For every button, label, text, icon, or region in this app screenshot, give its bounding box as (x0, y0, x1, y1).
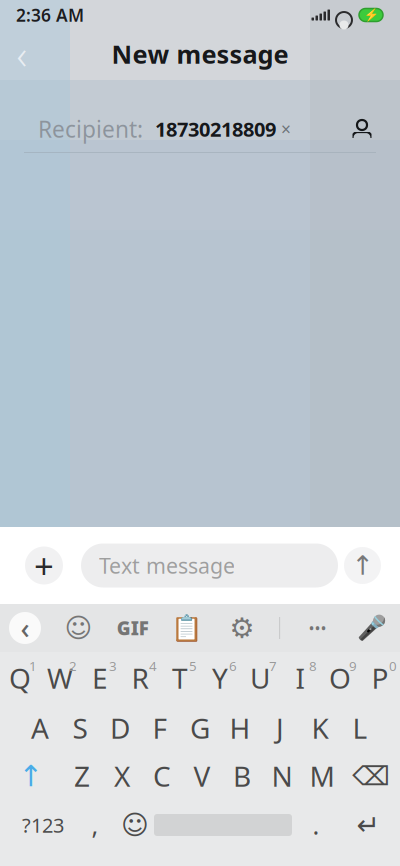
staticText: K (311, 709, 328, 747)
button[interactable]: Back (0, 32, 44, 76)
staticText: I (295, 659, 304, 697)
staticText: ?123 (22, 812, 64, 838)
button[interactable]: P (360, 654, 400, 702)
button[interactable]: L (340, 704, 380, 752)
staticText: ⌫ (352, 761, 390, 791)
button[interactable]: N (262, 752, 302, 800)
button[interactable]: 18730218809 (143, 116, 291, 142)
staticText: A (31, 709, 49, 747)
button[interactable]: Choose contact (342, 109, 382, 149)
button[interactable]: X (102, 752, 142, 800)
staticText: ☺ (64, 613, 92, 643)
button[interactable]: Space (154, 802, 292, 848)
button[interactable]: H (220, 704, 260, 752)
staticText: 4 (149, 657, 157, 675)
staticText: M (309, 757, 334, 795)
staticText: ☺ (121, 810, 149, 840)
staticText: New message (111, 37, 288, 71)
button[interactable]: A (20, 704, 60, 752)
staticText: O (329, 659, 351, 697)
button[interactable]: K (300, 704, 340, 752)
staticText: 5 (189, 657, 197, 675)
staticText: G (190, 709, 210, 747)
button[interactable]: G (180, 704, 220, 752)
staticText: J (276, 709, 284, 747)
staticText: E (92, 659, 108, 697)
button[interactable]: Comma (74, 802, 116, 848)
button[interactable]: Text message (81, 543, 338, 587)
staticText: Recipient: (38, 114, 143, 144)
staticText: 8 (309, 657, 317, 675)
button[interactable]: O (320, 654, 360, 702)
staticText: × (281, 117, 291, 140)
staticText: 1 (29, 657, 37, 675)
staticText: V (193, 757, 210, 795)
button[interactable]: J (260, 704, 300, 752)
button[interactable]: Add attachment (25, 546, 63, 584)
button[interactable]: Voice input (355, 611, 389, 645)
staticText: Text message (99, 551, 235, 580)
button[interactable]: D (100, 704, 140, 752)
button[interactable]: I (280, 654, 320, 702)
button[interactable]: Clipboard (170, 611, 204, 645)
button[interactable]: More (301, 611, 335, 645)
button[interactable]: Collapse toolbar (9, 612, 41, 644)
button[interactable]: ?123 (12, 802, 74, 848)
staticText: 2 (69, 657, 77, 675)
button[interactable]: GIF (116, 611, 150, 645)
staticText: 2:36 AM (16, 3, 84, 26)
button[interactable]: R (120, 654, 160, 702)
button[interactable]: W (40, 654, 80, 702)
staticText: H (229, 709, 250, 747)
staticText: ⚙ (229, 612, 254, 644)
button[interactable]: E (80, 654, 120, 702)
button[interactable]: Send (344, 547, 381, 584)
staticText: Z (74, 757, 90, 795)
staticText: ‹ (16, 27, 27, 80)
button[interactable]: Shift (0, 752, 62, 800)
staticText: S (72, 709, 87, 747)
staticText: 6 (229, 657, 237, 675)
button[interactable]: V (182, 752, 222, 800)
staticText: B (233, 757, 251, 795)
staticText: N (271, 757, 292, 795)
button[interactable]: Return (340, 802, 396, 848)
staticText: F (152, 709, 167, 747)
button[interactable]: M (302, 752, 342, 800)
staticText: ••• (309, 617, 327, 639)
button[interactable]: Y (200, 654, 240, 702)
button[interactable]: Z (62, 752, 102, 800)
staticText: P (371, 659, 388, 697)
button[interactable]: Stickers (61, 611, 95, 645)
button[interactable]: T (160, 654, 200, 702)
button[interactable]: Period (292, 802, 340, 848)
staticText: L (352, 709, 367, 747)
button[interactable]: B (222, 752, 262, 800)
staticText: ↑ (351, 550, 373, 581)
staticText: U (250, 659, 270, 697)
staticText: Q (9, 659, 31, 697)
staticText: ‹ (20, 609, 29, 647)
button[interactable]: Settings (225, 611, 259, 645)
staticText: ↑ (18, 759, 43, 793)
staticText: D (110, 709, 130, 747)
staticText: X (114, 757, 130, 795)
staticText: Y (212, 659, 228, 697)
staticText: 9 (349, 657, 357, 675)
button[interactable]: F (140, 704, 180, 752)
button[interactable]: Emoji (116, 802, 154, 848)
staticText: , (91, 808, 98, 842)
button[interactable]: Q (0, 654, 40, 702)
staticText: 18730218809 (155, 116, 276, 142)
staticText: W (47, 659, 73, 697)
staticText: T (172, 659, 188, 697)
staticText: C (153, 757, 171, 795)
button[interactable]: C (142, 752, 182, 800)
button[interactable]: U (240, 654, 280, 702)
staticText: . (312, 808, 319, 842)
staticText: 🎤 (357, 614, 387, 642)
staticText: 7 (269, 657, 277, 675)
button[interactable]: Backspace (342, 752, 400, 800)
button[interactable]: S (60, 704, 100, 752)
staticText: R (131, 659, 148, 697)
